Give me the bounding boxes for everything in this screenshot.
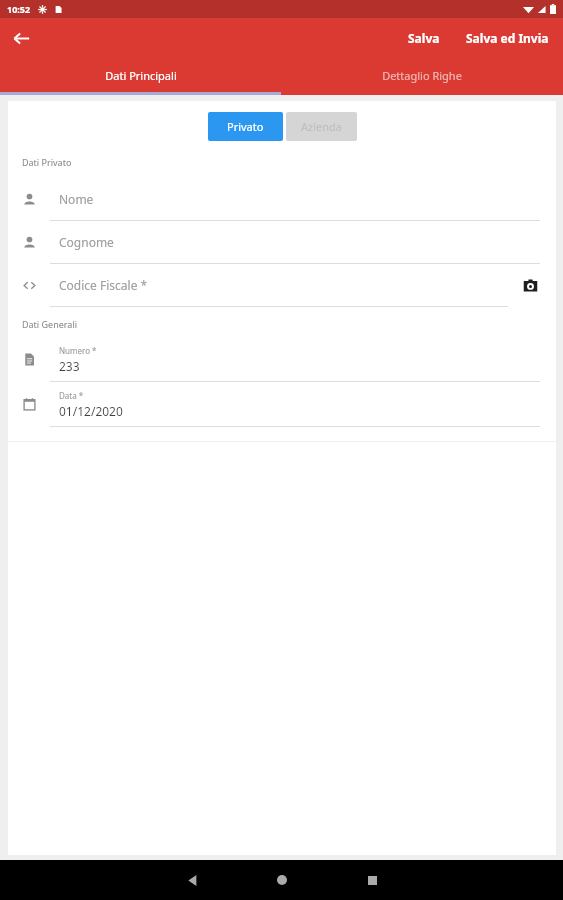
staticText: Salva xyxy=(408,30,440,46)
staticText: Codice Fiscale * xyxy=(59,277,148,293)
staticText: 233 xyxy=(59,358,80,374)
button[interactable]: Numero * xyxy=(8,337,556,382)
button[interactable]: Privato xyxy=(208,112,283,141)
staticText: 01/12/2020 xyxy=(59,403,123,419)
button[interactable]: Dati Principali xyxy=(0,58,281,92)
staticText: Dati Privato xyxy=(22,156,72,168)
button[interactable]: Salva xyxy=(400,24,448,52)
button[interactable]: Azienda xyxy=(286,112,357,141)
button[interactable]: Back xyxy=(172,860,212,900)
staticText: Nome xyxy=(59,191,94,207)
button[interactable]: Codice Fiscale * xyxy=(8,264,556,307)
staticText: Cognome xyxy=(59,234,114,250)
button[interactable]: Dettaglio Righe xyxy=(281,58,563,92)
button[interactable]: Salva ed Invia xyxy=(462,24,553,52)
staticText: Salva ed Invia xyxy=(466,30,549,46)
button[interactable]: Cognome xyxy=(8,221,556,264)
staticText: Privato xyxy=(227,119,264,134)
staticText: 10:52 xyxy=(7,3,31,15)
button[interactable]: Scan code xyxy=(520,275,540,295)
staticText: Dati Generali xyxy=(22,318,78,330)
button[interactable]: Home xyxy=(262,860,302,900)
staticText: Numero * xyxy=(59,345,97,356)
button[interactable]: Back xyxy=(6,23,36,53)
staticText: Dati Principali xyxy=(105,68,177,83)
staticText: Data * xyxy=(59,390,84,401)
button[interactable]: Nome xyxy=(8,178,556,221)
staticText: Azienda xyxy=(301,119,342,134)
staticText: Dettaglio Righe xyxy=(382,68,462,83)
button[interactable]: Data * xyxy=(8,382,556,427)
button[interactable]: Recents xyxy=(352,860,392,900)
